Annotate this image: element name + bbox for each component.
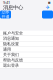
button[interactable]: 帮助与反馈	[0, 58, 53, 63]
staticText: 通用	[3, 47, 11, 52]
staticText: 消息中心	[3, 4, 23, 11]
button[interactable]: 关于我们	[0, 52, 53, 58]
staticText: ▮▮	[48, 1, 50, 4]
staticText: 消息通知	[3, 36, 19, 41]
button[interactable]: 账户与安全	[0, 31, 53, 36]
staticText: 立即开通	[1, 10, 9, 19]
staticText: 退出登录	[3, 63, 19, 68]
staticText: 账户与安全	[3, 31, 23, 35]
button[interactable]: Send	[45, 5, 50, 10]
button[interactable]: 隐私设置	[0, 41, 53, 47]
button[interactable]: More	[42, 10, 53, 18]
staticText: 隐私设置	[3, 41, 19, 46]
staticText: 9:41	[3, 0, 10, 5]
button[interactable]: 通用	[0, 47, 53, 52]
staticText: 关于我们	[3, 52, 19, 57]
button[interactable]: 消息通知	[0, 36, 53, 41]
staticText: ✈	[45, 4, 49, 11]
button[interactable]: 退出登录	[0, 63, 53, 68]
staticText: 帮助与反馈	[3, 58, 23, 62]
button[interactable]: 立即开通	[0, 10, 11, 18]
